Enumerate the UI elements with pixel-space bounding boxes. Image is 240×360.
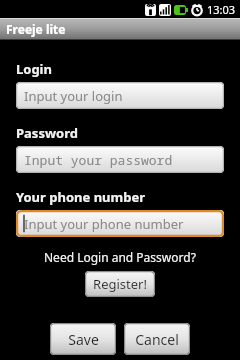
button[interactable]: Input your phone number	[16, 210, 224, 237]
staticText: Password	[16, 124, 78, 142]
button[interactable]: Register!	[85, 271, 155, 297]
staticText: Need Login and Password?	[44, 249, 196, 265]
staticText: Input your phone number	[24, 215, 184, 233]
other: Alarm	[191, 4, 203, 16]
staticText: Input your password	[24, 151, 173, 169]
staticText: 13:03	[207, 2, 236, 17]
staticText: Input your login	[24, 87, 123, 105]
staticText: Your phone number	[16, 188, 145, 206]
staticText: Register!	[93, 275, 147, 293]
staticText: Login	[16, 60, 52, 78]
button[interactable]: Input your login	[16, 82, 224, 109]
button[interactable]: Input your password	[16, 146, 224, 173]
button[interactable]: Save	[50, 323, 116, 355]
button[interactable]: Cancel	[124, 323, 190, 355]
staticText: Cancel	[135, 330, 179, 349]
other: Wi-Fi	[145, 4, 156, 16]
other: Battery	[174, 5, 188, 15]
staticText: Freeje lite	[6, 21, 66, 37]
staticText: Save	[68, 330, 99, 349]
other: Signal	[159, 4, 171, 16]
